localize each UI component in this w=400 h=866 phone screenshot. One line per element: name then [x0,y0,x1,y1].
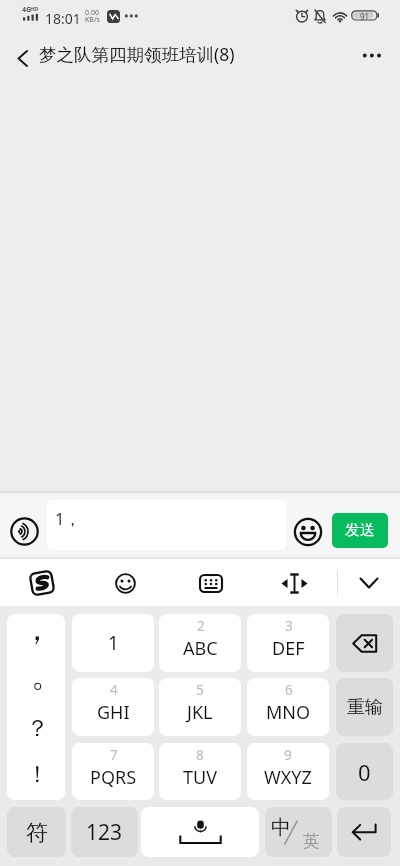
button[interactable]: 4 [72,678,154,736]
button[interactable]: Back [4,35,40,81]
staticText: 梦之队第四期领班培训(8) [39,42,235,66]
staticText: JKL [187,700,213,725]
button[interactable]: 中 [265,807,332,857]
staticText: 中 [271,815,291,840]
staticText: 5 [196,681,204,699]
button[interactable]: Keyboard layout [190,565,231,601]
staticText: 8 [196,746,204,764]
button[interactable]: Enter [337,807,391,857]
button[interactable]: Voice input [3,510,46,553]
button[interactable]: Sogou input settings [20,562,64,604]
staticText: ABC [183,636,218,661]
staticText: 符 [26,819,48,847]
button[interactable]: 重输 [336,678,393,736]
button[interactable]: 2 [159,614,241,672]
staticText: HD [30,5,39,12]
button[interactable]: Emoji [288,511,327,552]
staticText: ！ [26,760,49,789]
staticText: 9 [284,746,292,764]
staticText: 0.00 [85,8,99,18]
staticText: ， [21,614,53,649]
staticText: 6 [285,681,293,699]
button[interactable]: Hide keyboard [347,564,391,602]
staticText: MNO [266,700,311,725]
button[interactable]: 1， [47,500,286,550]
staticText: 2 [197,617,205,635]
button[interactable]: 0 [336,743,393,800]
staticText: 重输 [347,696,383,719]
staticText: 英 [303,831,320,852]
staticText: 123 [86,818,123,847]
button[interactable]: 符 [7,807,66,857]
staticText: 18:01 [45,9,81,28]
button[interactable]: 123 [71,807,138,857]
staticText: 1 [108,630,119,656]
staticText: 发送 [345,521,375,540]
staticText: TUV [183,765,217,790]
staticText: PQRS [90,765,137,790]
button[interactable]: 发送 [332,513,388,548]
button[interactable]: Delete [336,614,393,672]
button[interactable]: Emoji keyboard [104,562,147,604]
staticText: 3 [285,617,293,635]
button[interactable]: 9 [247,743,329,800]
staticText: 1， [55,507,81,530]
button[interactable]: 1 [72,614,154,672]
staticText: 4G [22,5,32,15]
button[interactable]: 3 [247,614,329,672]
staticText: ？ [26,714,49,743]
button[interactable]: 7 [72,743,154,800]
button[interactable]: Move cursor [274,564,314,602]
button[interactable]: Punctuation [7,614,65,800]
staticText: 。 [31,655,63,695]
staticText: 91 [360,11,370,22]
button[interactable]: 8 [159,743,241,800]
staticText: 0 [358,757,371,787]
button[interactable]: 6 [247,678,329,736]
staticText: GHI [97,700,130,725]
staticText: 7 [110,746,118,764]
staticText: WXYZ [264,765,312,790]
button[interactable]: 5 [159,678,241,736]
button[interactable]: Voice input [141,807,259,857]
button[interactable]: More options [352,35,400,81]
staticText: 4 [110,681,118,699]
staticText: KB/s [85,15,100,25]
staticText: DEF [272,636,305,661]
